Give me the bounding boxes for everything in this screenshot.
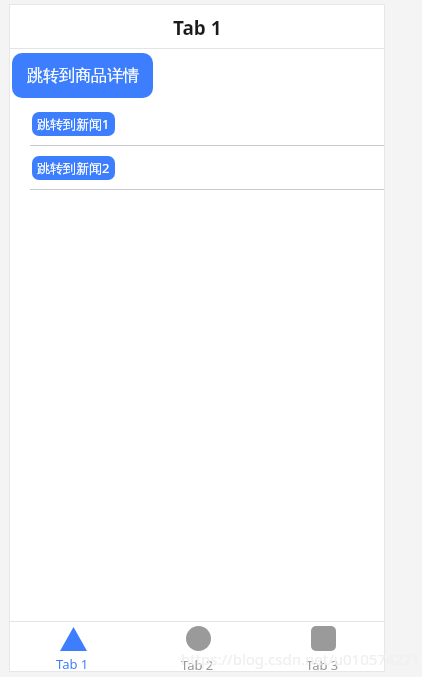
button[interactable]: Tab 3 <box>260 622 385 672</box>
staticText: Tab 1 <box>173 15 222 41</box>
other: Tab 1 <box>59 627 86 651</box>
staticText: Tab 3 <box>306 656 339 672</box>
staticText: https://blog.csdn.net/u010574271 <box>181 649 421 669</box>
button[interactable]: Tab 2 <box>135 622 260 672</box>
staticText: 跳转到商品详情 <box>27 66 139 86</box>
other: Tab 3 <box>310 627 335 652</box>
staticText: Tab 1 <box>56 655 89 672</box>
button[interactable]: 跳转到新闻1 <box>32 112 115 136</box>
staticText: 跳转到新闻2 <box>37 159 110 177</box>
button[interactable]: 跳转到商品详情 <box>12 53 153 98</box>
other: Tab 2 <box>185 627 210 652</box>
button[interactable]: 跳转到新闻2 <box>32 156 115 180</box>
staticText: Tab 2 <box>181 656 214 672</box>
staticText: 跳转到新闻1 <box>37 115 110 133</box>
button[interactable]: Tab 1 <box>9 622 135 672</box>
